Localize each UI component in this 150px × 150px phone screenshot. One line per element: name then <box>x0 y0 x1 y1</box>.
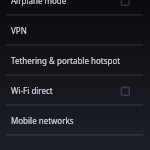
button[interactable]: Toggle Airplane mode <box>118 0 132 7</box>
staticText: Mobile networks <box>11 115 74 126</box>
button[interactable]: Airplane mode <box>0 0 150 15</box>
button[interactable]: Wi-Fi direct <box>0 75 150 105</box>
staticText: Wi-Fi direct <box>11 85 53 96</box>
button[interactable]: Toggle Wi-Fi direct <box>118 83 132 97</box>
staticText: Tethering & portable hotspot <box>11 55 121 66</box>
button[interactable]: VPN <box>0 15 150 45</box>
button[interactable]: Tethering & portable hotspot <box>0 45 150 75</box>
staticText: Airplane mode <box>11 0 67 6</box>
button[interactable]: Mobile networks <box>0 105 150 135</box>
staticText: VPN <box>11 25 27 36</box>
